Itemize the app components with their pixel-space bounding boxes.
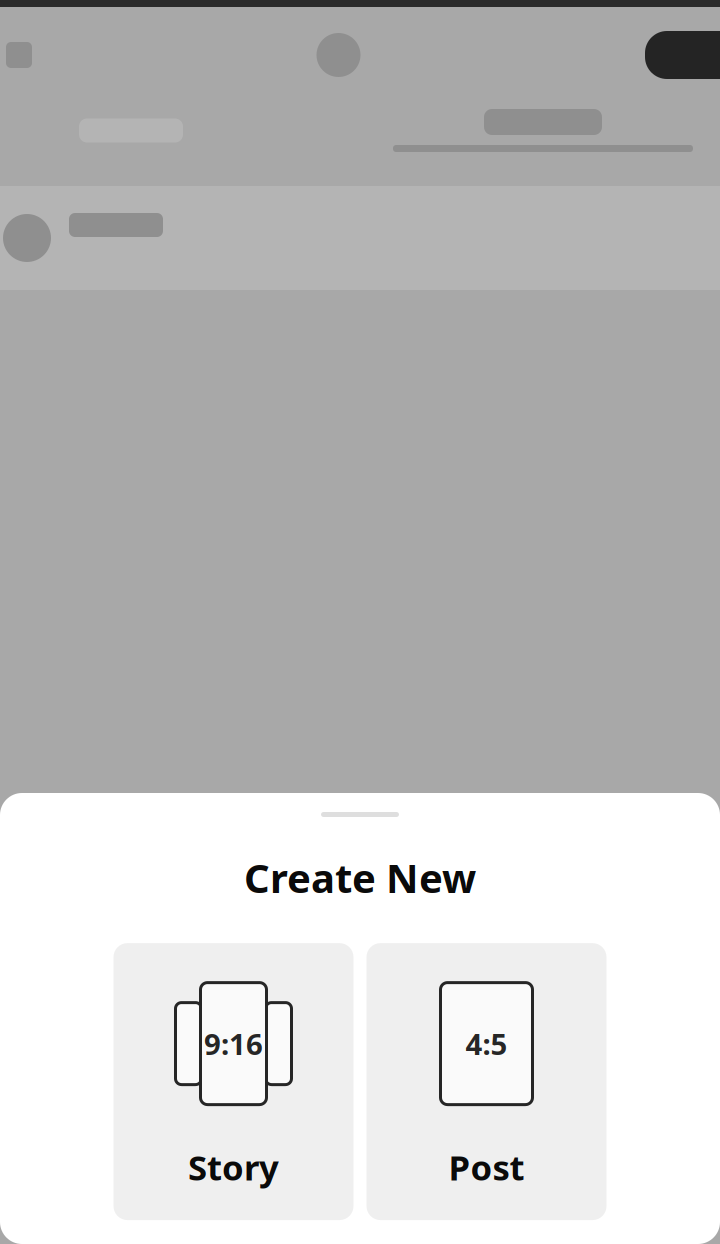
- button[interactable]: 4:5: [366, 943, 606, 1220]
- staticText: Story: [188, 1144, 279, 1190]
- staticText: Create New: [244, 851, 476, 904]
- staticText: Post: [448, 1144, 524, 1190]
- staticText: 9:16: [204, 1024, 263, 1063]
- staticText: 4:5: [465, 1024, 507, 1063]
- button[interactable]: [113, 943, 353, 1220]
